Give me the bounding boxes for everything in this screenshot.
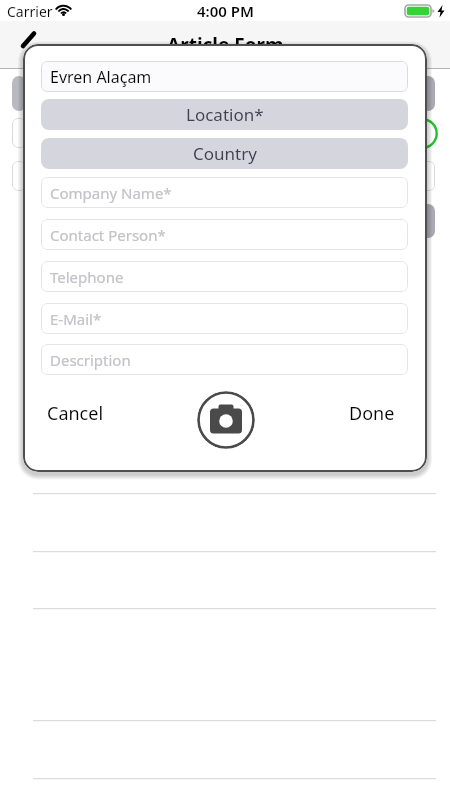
button[interactable]: Description (41, 344, 408, 375)
button[interactable] (18, 30, 38, 50)
button[interactable]: E-Mail* (41, 303, 408, 334)
staticText: Company Name* (50, 183, 172, 203)
button[interactable]: Country (41, 138, 408, 169)
staticText: Description (50, 350, 131, 370)
staticText: Carrier (7, 2, 53, 21)
staticText: Cancel (47, 401, 104, 426)
staticText: 4:00 PM (197, 1, 254, 21)
button[interactable]: Company Name* (41, 177, 408, 208)
button[interactable]: Done (324, 393, 404, 433)
staticText: Evren Alaçam (50, 66, 152, 88)
staticText: Telephone (50, 267, 124, 287)
staticText: Country (193, 142, 257, 165)
staticText: Done (349, 401, 395, 426)
staticText: Contact Person* (50, 225, 166, 245)
button[interactable]: Location* (41, 99, 408, 130)
staticText: Location* (186, 103, 264, 126)
button[interactable]: Evren Alaçam (41, 61, 408, 92)
button[interactable]: Telephone (41, 261, 408, 292)
staticText: E-Mail* (50, 309, 102, 329)
button[interactable] (197, 391, 255, 449)
staticText: Article Form (167, 32, 284, 58)
button[interactable]: Cancel (41, 393, 121, 433)
button[interactable]: Contact Person* (41, 219, 408, 250)
